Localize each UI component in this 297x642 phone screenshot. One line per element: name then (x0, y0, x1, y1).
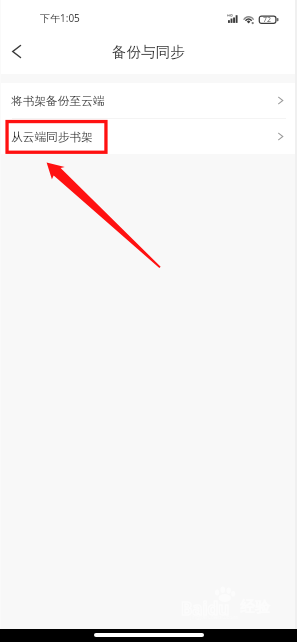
staticText: 将书架备份至云端 (11, 94, 105, 109)
staticText: 从云端同步书架 (11, 130, 93, 145)
staticText: 下午1:05 (40, 11, 80, 25)
button[interactable]: Back (0, 34, 33, 68)
button[interactable]: 将书架备份至云端 (0, 83, 297, 118)
staticText: 72 (263, 15, 272, 25)
staticText: 备份与同步 (112, 43, 185, 61)
button[interactable]: 从云端同步书架 (0, 119, 297, 154)
